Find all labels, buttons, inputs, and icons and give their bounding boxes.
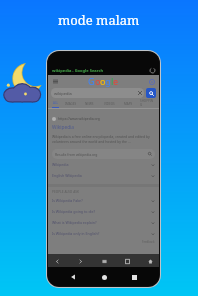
staticText: Is Wikipedia Fake? — [52, 198, 83, 203]
staticText: mode malam — [58, 11, 140, 29]
staticText: ALL — [53, 101, 59, 105]
button[interactable]: Home — [145, 256, 155, 266]
staticText: Is Wikipedia only in English? — [52, 231, 100, 236]
staticText: e — [113, 75, 118, 87]
button[interactable]: Wikipedia — [52, 159, 155, 170]
staticText: G — [88, 75, 95, 87]
button[interactable]: Recents — [128, 271, 140, 283]
staticText: l — [111, 75, 113, 87]
button[interactable]: Back — [52, 256, 62, 266]
button[interactable]: ALL — [52, 101, 59, 108]
button[interactable]: Menu — [99, 256, 109, 266]
staticText: MAPS — [124, 102, 133, 106]
button[interactable]: Is Wikipedia only in English? — [52, 228, 155, 239]
button[interactable]: Forward — [75, 256, 85, 266]
button[interactable]: wikipedia — [51, 88, 144, 98]
button[interactable]: Account — [147, 77, 156, 86]
staticText: Wikipedia — [52, 124, 75, 131]
staticText: Results from wikipedia.org — [55, 152, 98, 157]
staticText: g — [105, 75, 111, 87]
staticText: NEWS — [85, 102, 94, 106]
staticText: VIDEOS — [104, 102, 115, 106]
staticText: Feedback — [142, 240, 155, 244]
staticText: Wikipedia — [52, 162, 69, 167]
button[interactable]: Tabs — [122, 256, 132, 266]
button[interactable]: IMAGES — [63, 102, 78, 108]
button[interactable]: Reload — [148, 66, 156, 74]
button[interactable]: Back — [67, 271, 79, 283]
button[interactable]: Home — [98, 271, 110, 283]
staticText: https://www.wikipedia.org — [58, 116, 100, 121]
button[interactable]: SHOPPING — [140, 99, 155, 108]
staticText: wikipedia — [54, 91, 72, 96]
button[interactable]: Is Wikipedia going to die? — [52, 206, 155, 217]
button[interactable]: Results from wikipedia.org — [52, 149, 155, 159]
button[interactable]: English Wikipedia — [52, 170, 155, 181]
button[interactable]: What is Wikipedia explain? — [52, 217, 155, 228]
staticText: IMAGES — [65, 102, 77, 106]
staticText: English Wikipedia — [52, 173, 82, 178]
staticText: o — [100, 75, 105, 87]
button[interactable]: VIDEOS — [102, 102, 117, 108]
staticText: wikipedia - Google Search — [52, 68, 104, 73]
button[interactable]: Search — [146, 88, 156, 98]
staticText: SHOPPING — [140, 99, 155, 107]
staticText: o — [95, 75, 100, 87]
staticText: Is Wikipedia going to die? — [52, 209, 96, 214]
button[interactable]: MAPS — [121, 102, 136, 108]
button[interactable]: Is Wikipedia Fake? — [52, 195, 155, 206]
button[interactable]: Menu — [51, 77, 60, 86]
staticText: PEOPLE ALSO ASK — [52, 190, 79, 194]
button[interactable]: NEWS — [82, 102, 97, 108]
staticText: What is Wikipedia explain? — [52, 220, 97, 225]
staticText: Wikipedia is a free online encyclopedia,… — [52, 134, 155, 144]
